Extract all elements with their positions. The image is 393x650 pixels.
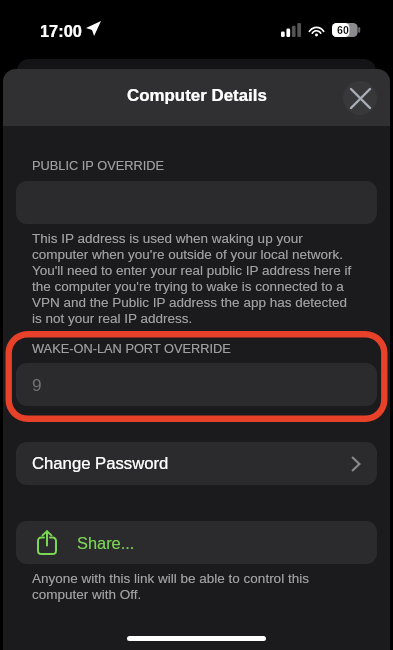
staticText: Anyone with this link will be able to co… <box>32 571 342 602</box>
staticText: Computer Details <box>127 86 267 105</box>
staticText: PUBLIC IP OVERRIDE <box>32 158 165 172</box>
staticText: 17:00 <box>40 22 82 40</box>
staticText: This IP address is used when waking up y… <box>32 231 356 326</box>
staticText: Share... <box>77 534 135 552</box>
button[interactable]: Share... <box>16 521 377 564</box>
staticText: 60 <box>337 24 349 36</box>
staticText: WAKE-ON-LAN PORT OVERRIDE <box>32 341 231 355</box>
button[interactable]: Close <box>343 81 377 115</box>
button[interactable]: Change Password <box>16 442 377 485</box>
staticText: 9 <box>32 375 42 394</box>
staticText: Change Password <box>32 454 169 473</box>
button[interactable]: 9 <box>16 363 377 406</box>
